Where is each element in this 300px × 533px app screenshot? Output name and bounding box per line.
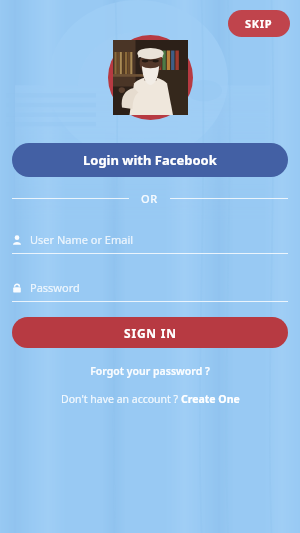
staticText: Forgot your password ? bbox=[90, 364, 210, 378]
button[interactable]: Forgot your password ? bbox=[84, 361, 216, 381]
button[interactable]: Create One bbox=[181, 389, 240, 409]
staticText: Login with Facebook bbox=[83, 151, 217, 169]
staticText: SKIP bbox=[245, 16, 273, 31]
staticText: OR bbox=[141, 191, 158, 206]
staticText: User Name or Email bbox=[30, 232, 134, 247]
button[interactable]: Password bbox=[12, 280, 288, 302]
staticText: Create One bbox=[181, 392, 240, 406]
button[interactable]: Login with Facebook bbox=[12, 143, 288, 177]
button[interactable]: User Name or Email bbox=[12, 232, 288, 254]
button[interactable]: SKIP bbox=[228, 10, 290, 37]
staticText: Password bbox=[30, 280, 80, 295]
staticText: Don't have an account ? bbox=[61, 392, 181, 406]
button[interactable]: SIGN IN bbox=[12, 317, 288, 348]
staticText: SIGN IN bbox=[124, 325, 177, 341]
